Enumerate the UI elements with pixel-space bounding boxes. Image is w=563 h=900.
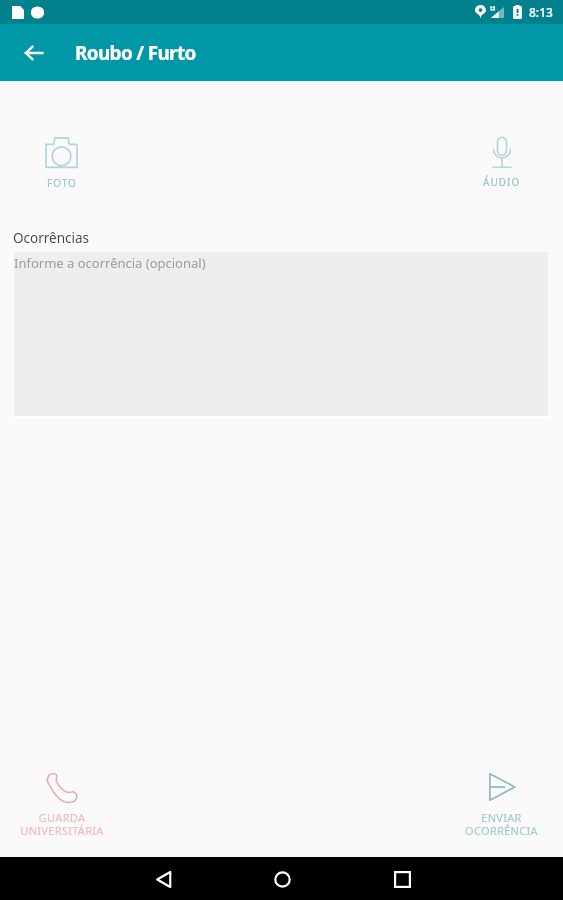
staticText: FOTO [47, 176, 77, 190]
button[interactable]: ENVIAR OCORRÊNCIA [459, 768, 544, 842]
staticText: GUARDA UNIVERSITÁRIA [20, 810, 104, 838]
button[interactable]: GUARDA UNIVERSITÁRIA [14, 768, 110, 842]
button[interactable]: Home [262, 859, 302, 899]
staticText: Ocorrências [13, 229, 90, 247]
button[interactable]: ÁUDIO [477, 133, 527, 193]
button[interactable]: FOTO [39, 132, 84, 194]
button[interactable]: Back [13, 32, 55, 74]
staticText: 8:13 [529, 4, 553, 20]
button[interactable]: Informe a ocorrência (opcional) [14, 252, 548, 416]
staticText: Roubo / Furto [75, 40, 196, 66]
staticText: ENVIAR OCORRÊNCIA [465, 810, 538, 838]
button[interactable]: Back [143, 859, 183, 899]
staticText: Informe a ocorrência (opcional) [14, 254, 206, 272]
button[interactable]: Recents [382, 859, 422, 899]
staticText: ÁUDIO [483, 175, 521, 189]
